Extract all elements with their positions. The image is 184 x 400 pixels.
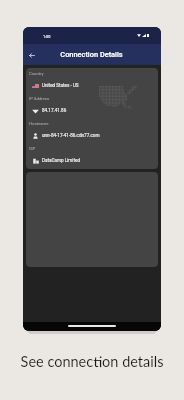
staticText: Hostname xyxy=(29,121,49,126)
staticText: ISP xyxy=(29,146,36,151)
staticText: DataCamp Limited xyxy=(42,158,81,163)
staticText: 84.17.41.86 xyxy=(42,108,67,113)
button[interactable]: Hostname xyxy=(28,120,158,145)
button[interactable]: IP Address xyxy=(28,95,158,120)
staticText: See connection details xyxy=(0,353,184,370)
staticText: United States - US xyxy=(42,83,79,88)
staticText: Country xyxy=(29,71,44,76)
staticText: 1:00 xyxy=(43,34,51,38)
button[interactable]: Country xyxy=(28,70,158,95)
staticText: unn-84-17-41-86.cdn77.com xyxy=(42,133,100,138)
staticText: IP Address xyxy=(29,96,50,101)
staticText: Connection Details xyxy=(60,50,123,59)
button[interactable]: Back xyxy=(25,47,39,63)
button[interactable]: ISP xyxy=(28,145,158,169)
